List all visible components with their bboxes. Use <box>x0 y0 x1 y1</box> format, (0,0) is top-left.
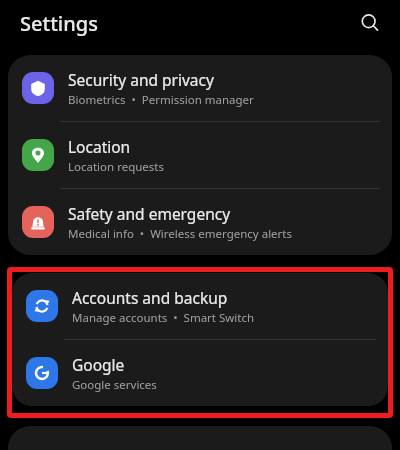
button[interactable]: Accounts and backup <box>12 273 388 339</box>
staticText: Biometrics • Permission manager <box>68 92 254 108</box>
staticText: Security and privacy <box>68 69 214 90</box>
button[interactable]: Google <box>12 340 388 406</box>
staticText: Medical info • Wireless emergency alerts <box>68 226 292 242</box>
button[interactable]: Location <box>8 122 392 188</box>
staticText: Location requests <box>68 159 164 175</box>
button[interactable]: Security and privacy <box>8 55 392 121</box>
staticText: Location <box>68 136 131 157</box>
button[interactable]: Search <box>352 5 388 41</box>
staticText: Manage accounts • Smart Switch <box>72 310 255 326</box>
staticText: Accounts and backup <box>72 287 228 308</box>
staticText: Google <box>72 354 125 375</box>
staticText: Safety and emergency <box>68 203 231 224</box>
staticText: Google services <box>72 377 157 393</box>
button[interactable]: Safety and emergency <box>8 189 392 255</box>
button[interactable] <box>8 426 392 450</box>
staticText: Settings <box>20 10 98 37</box>
